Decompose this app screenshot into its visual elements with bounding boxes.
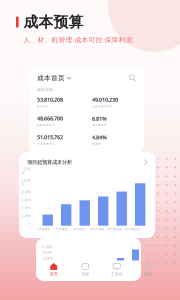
staticText: 我的 xyxy=(144,271,152,276)
staticText: 人、材、机管理 成本可控 保障利润 xyxy=(24,36,133,44)
staticText: 河北大项目 xyxy=(90,228,105,231)
staticText: 4.00% xyxy=(22,207,31,210)
staticText: 53,810,208 xyxy=(37,96,63,103)
staticText: 2.00% xyxy=(22,214,31,218)
staticText: 成本分析 xyxy=(37,87,53,92)
button[interactable]: 项目超预算成本分析 xyxy=(19,152,155,168)
staticText: 收入(元) xyxy=(37,104,48,108)
staticText: 项目超预算成本分析 xyxy=(27,159,72,166)
button[interactable]: 成本首页 xyxy=(29,67,144,87)
staticText: 武汉新福来 xyxy=(107,228,122,231)
staticText: 6.81% xyxy=(92,115,107,122)
staticText: 计划成本(元) xyxy=(37,142,54,145)
staticText: 8.00% xyxy=(22,191,31,194)
staticText: 新工程总部 xyxy=(125,228,140,231)
staticText: 成都项目 xyxy=(38,228,50,231)
staticText: 12.00% xyxy=(22,168,31,175)
staticText: 利润率 xyxy=(92,142,101,145)
staticText: 6.00% xyxy=(43,257,52,260)
staticText: 10.00% xyxy=(41,245,52,249)
staticText: 首页 xyxy=(50,271,58,276)
staticText: 10.00% xyxy=(22,179,31,186)
staticText: 成本首页 xyxy=(37,74,65,82)
staticText: 8.00% xyxy=(43,251,52,255)
staticText: 郑州项目 xyxy=(74,228,86,231)
staticText: 0 xyxy=(29,222,31,226)
staticText: 成本预算 xyxy=(24,13,84,31)
button[interactable]: 首页 xyxy=(38,261,69,277)
staticText: 工作台 xyxy=(111,271,123,276)
staticText: 51,015,762 xyxy=(37,134,63,141)
button[interactable]: 消息 xyxy=(69,261,101,277)
staticText: 成本偏差率 xyxy=(92,123,107,127)
button[interactable]: 我的 xyxy=(132,261,164,277)
staticText: 天津项目 xyxy=(56,228,68,231)
staticText: 目标成本(元) xyxy=(37,123,54,127)
button[interactable]: 工作台 xyxy=(101,261,132,277)
staticText: 49,010,230 xyxy=(92,96,118,103)
staticText: 6.00% xyxy=(22,199,31,202)
staticText: 已发生成本(元) xyxy=(92,104,112,108)
staticText: 消息 xyxy=(81,271,89,276)
staticText: 48,666,700 xyxy=(37,115,63,122)
staticText: 4.84% xyxy=(92,134,107,141)
